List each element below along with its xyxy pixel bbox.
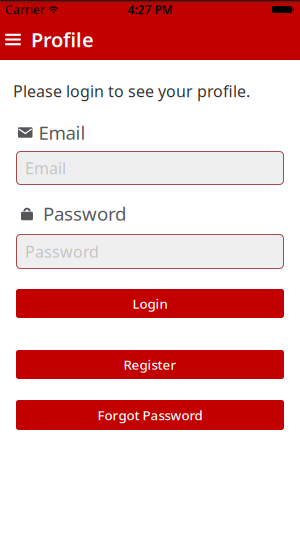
textField[interactable] bbox=[25, 157, 284, 179]
staticText: Profile bbox=[31, 26, 94, 53]
staticText: Login bbox=[132, 295, 167, 312]
button[interactable]: Forgot Password bbox=[16, 400, 284, 430]
staticText: Password bbox=[25, 241, 99, 262]
staticText: Please login to see your profile. bbox=[13, 80, 250, 102]
staticText: Register bbox=[123, 356, 176, 373]
textField[interactable] bbox=[25, 241, 284, 262]
button[interactable]: Login bbox=[16, 289, 284, 318]
button[interactable]: Menu bbox=[1, 25, 25, 53]
button[interactable]: Register bbox=[16, 350, 284, 379]
staticText: 4:27 PM bbox=[127, 1, 172, 17]
staticText: Email bbox=[38, 120, 85, 145]
staticText: Password bbox=[43, 201, 126, 226]
staticText: Email bbox=[25, 157, 66, 179]
staticText: Carrier bbox=[5, 1, 45, 17]
staticText: Forgot Password bbox=[97, 406, 202, 424]
